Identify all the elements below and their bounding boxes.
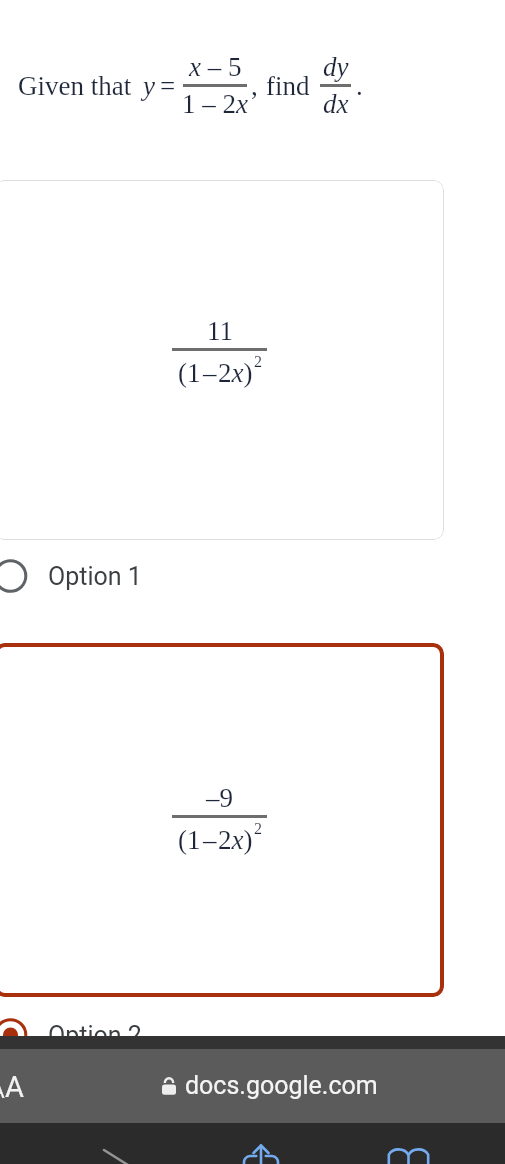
- staticText: A: [5, 1070, 24, 1104]
- button[interactable]: Option 1: [0, 553, 505, 599]
- staticText: Option 1: [48, 562, 142, 591]
- button[interactable]: Forward: [92, 1146, 140, 1164]
- staticText: Given that: [18, 71, 132, 101]
- staticText: 1 – 2x: [182, 89, 248, 119]
- staticText: dx: [323, 89, 349, 119]
- staticText: 11: [207, 316, 233, 346]
- button[interactable]: Page settings: [0, 1064, 32, 1110]
- staticText: –: [203, 358, 217, 388]
- button[interactable]: Share: [237, 1144, 285, 1164]
- staticText: x – 5: [189, 52, 242, 82]
- staticText: 2x): [218, 358, 253, 388]
- staticText: .: [356, 71, 363, 101]
- staticText: –: [203, 825, 217, 855]
- button[interactable]: Option 2: [0, 1012, 505, 1058]
- staticText: ,: [251, 71, 258, 101]
- staticText: =: [160, 71, 176, 101]
- staticText: Option 2: [48, 1021, 142, 1050]
- staticText: find: [266, 71, 310, 101]
- staticText: A: [0, 1079, 5, 1104]
- button[interactable]: –9: [0, 643, 444, 997]
- staticText: docs.google.com: [185, 1071, 378, 1100]
- staticText: 2: [254, 820, 262, 838]
- button[interactable]: Bookmarks: [384, 1146, 432, 1164]
- button[interactable]: 11: [0, 180, 444, 540]
- staticText: 2x): [218, 825, 253, 855]
- staticText: (1: [178, 825, 201, 855]
- staticText: –9: [206, 783, 233, 813]
- staticText: 2: [254, 353, 262, 371]
- staticText: (1: [178, 358, 201, 388]
- staticText: y: [143, 71, 155, 101]
- staticText: dy: [323, 52, 349, 82]
